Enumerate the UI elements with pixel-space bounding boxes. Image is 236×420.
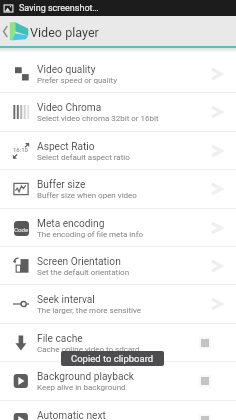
staticText: Saving screenshot… (19, 3, 99, 14)
button[interactable]: Seek interval (0, 285, 236, 322)
button[interactable]: Video quality (0, 55, 236, 92)
button[interactable]: Video Chroma (0, 93, 236, 130)
staticText: Buffer size when open video (37, 191, 137, 200)
button[interactable]: Navigate up (0, 16, 30, 46)
staticText: Code (14, 226, 29, 233)
staticText: Video player (30, 25, 99, 40)
staticText: Select video chroma 32bit or 16bit (37, 114, 159, 123)
staticText: Background playback (37, 371, 134, 383)
staticText: Meta encoding (37, 218, 105, 230)
staticText: Video quality (37, 64, 96, 76)
staticText: Select default aspect ratio (37, 153, 130, 162)
staticText: Prefer speed or quality (37, 76, 118, 85)
staticText: Cache online video to sdcard (37, 345, 140, 354)
button[interactable]: 16:10 (0, 132, 236, 169)
staticText: Keep alive in background (37, 383, 126, 392)
staticText: Buffer size (37, 179, 86, 191)
staticText: File cache (37, 333, 83, 345)
button[interactable]: Buffer size (0, 170, 236, 207)
button[interactable]: Background playback (0, 362, 236, 399)
staticText: Automatic next (37, 410, 106, 420)
button[interactable]: Code (0, 209, 236, 246)
staticText: Video Chroma (37, 102, 102, 114)
button[interactable]: File cache (0, 324, 236, 361)
staticText: Screen Orientation (37, 256, 121, 268)
staticText: The encoding of file meta info (37, 230, 144, 239)
staticText: Copied to clipboard (71, 353, 154, 364)
button[interactable]: Screen Orientation (0, 247, 236, 284)
button[interactable]: Automatic next (0, 401, 236, 420)
staticText: Aspect Ratio (37, 141, 95, 153)
staticText: The larger, the more sensitive (37, 306, 142, 315)
staticText: 16:10 (13, 146, 28, 153)
staticText: Set the default orientation (37, 268, 130, 277)
staticText: Seek interval (37, 294, 95, 306)
